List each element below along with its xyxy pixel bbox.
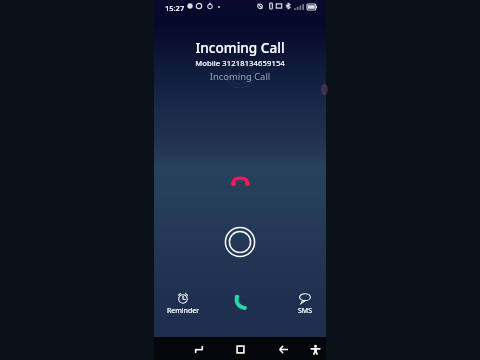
button[interactable]: Recents bbox=[232, 341, 248, 357]
staticText: Reminder bbox=[161, 306, 205, 316]
button[interactable]: Swipe to answer bbox=[225, 227, 255, 257]
button[interactable]: Back bbox=[275, 341, 291, 357]
staticText: 15:27 bbox=[165, 3, 185, 13]
staticText: Incoming Call bbox=[154, 70, 326, 83]
button[interactable]: SMS bbox=[289, 289, 321, 316]
staticText: Incoming Call bbox=[154, 38, 326, 57]
staticText: SMS bbox=[289, 306, 321, 316]
button[interactable]: Hide keyboard bbox=[190, 341, 206, 357]
button[interactable]: Decline call bbox=[227, 173, 253, 189]
button[interactable]: Reminder bbox=[161, 289, 205, 316]
button[interactable]: Accessibility bbox=[307, 341, 323, 357]
button[interactable]: Answer call bbox=[230, 293, 250, 311]
staticText: Mobile 31218134659154 bbox=[154, 58, 326, 68]
